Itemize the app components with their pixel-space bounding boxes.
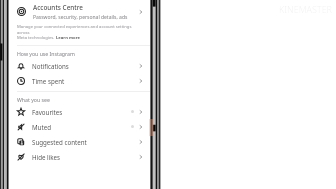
staticText: How you use Instagram <box>17 50 75 57</box>
staticText: Suggested content <box>32 138 87 146</box>
staticText: What you see <box>17 96 50 103</box>
staticText: Manage your connected experiences and ac… <box>17 24 140 35</box>
staticText: Hide likes <box>32 153 61 161</box>
button[interactable]: Learn more <box>56 35 81 41</box>
staticText: Accounts Centre <box>33 3 84 12</box>
staticText: Notifications <box>32 62 69 70</box>
staticText: Time spent <box>32 77 65 85</box>
button[interactable]: Notifications <box>9 58 150 73</box>
button[interactable]: Muted <box>9 119 150 134</box>
button[interactable]: Suggested content <box>9 134 150 149</box>
staticText: Favourites <box>32 108 63 116</box>
staticText: Password, security, personal details, ad… <box>33 14 128 21</box>
button[interactable]: Hide likes <box>9 149 150 164</box>
button[interactable]: Accounts Centre <box>9 0 150 23</box>
button[interactable]: Time spent <box>9 73 150 88</box>
staticText: Meta technologies. <box>17 35 56 41</box>
staticText: Muted <box>32 123 51 131</box>
button[interactable]: Favourites <box>9 104 150 119</box>
